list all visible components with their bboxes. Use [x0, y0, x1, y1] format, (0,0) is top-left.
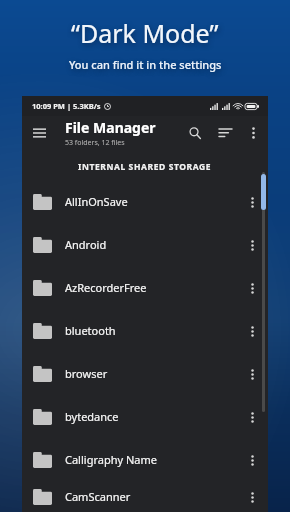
staticText: bytedance [65, 409, 119, 424]
staticText: 10:09 PM | 5.3KB/s [32, 101, 101, 111]
button[interactable]: Item options [240, 448, 264, 472]
button[interactable]: Item options [240, 405, 264, 429]
button[interactable]: Item options [240, 362, 264, 386]
button[interactable]: Calligraphy Name [22, 438, 268, 481]
button[interactable]: bluetooth [22, 309, 268, 352]
button[interactable]: bytedance [22, 395, 268, 438]
staticText: 53 folders, 12 files [65, 138, 125, 148]
button[interactable]: Item options [240, 485, 264, 509]
button[interactable]: AzRecorderFree [22, 266, 268, 309]
staticText: You can find it in the settings [69, 57, 222, 72]
button[interactable]: browser [22, 352, 268, 395]
staticText: browser [65, 366, 108, 381]
button[interactable]: AllInOnSave [22, 180, 268, 223]
button[interactable]: More options [240, 120, 266, 146]
staticText: “Dark Mode” [71, 16, 219, 50]
button[interactable]: CamScanner [22, 481, 268, 512]
button[interactable]: Sort [210, 118, 240, 148]
button[interactable]: Item options [240, 233, 264, 257]
button[interactable]: Item options [240, 276, 264, 300]
staticText: Calligraphy Name [65, 452, 157, 467]
staticText: INTERNAL SHARED STORAGE [78, 161, 212, 173]
staticText: File Manager [65, 118, 156, 137]
staticText: Android [65, 237, 107, 252]
staticText: AllInOnSave [65, 194, 128, 209]
button[interactable]: Android [22, 223, 268, 266]
staticText: AzRecorderFree [65, 280, 147, 295]
staticText: CamScanner [65, 489, 131, 504]
button[interactable]: Item options [240, 190, 264, 214]
staticText: bluetooth [65, 323, 116, 338]
button[interactable]: Search [180, 118, 210, 148]
button[interactable]: Item options [240, 319, 264, 343]
button[interactable]: Open navigation menu [22, 116, 56, 150]
